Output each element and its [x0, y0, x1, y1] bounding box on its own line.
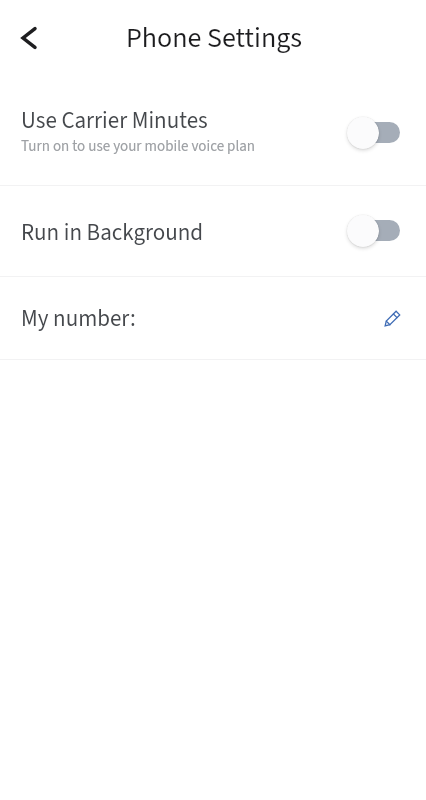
button[interactable]: Use Carrier Minutes: [0, 83, 426, 185]
staticText: Turn on to use your mobile voice plan: [21, 136, 256, 157]
staticText: Use Carrier Minutes: [21, 104, 208, 137]
button[interactable]: Run in Background: [0, 186, 426, 276]
staticText: Run in Background: [21, 216, 204, 249]
button[interactable]: Edit: [375, 299, 411, 335]
button[interactable]: Toggle: [346, 116, 400, 150]
button[interactable]: My number:: [0, 277, 426, 359]
staticText: Phone Settings: [126, 18, 303, 58]
button[interactable]: Toggle: [346, 214, 400, 248]
button[interactable]: Back: [7, 16, 51, 60]
staticText: My number:: [21, 302, 136, 335]
